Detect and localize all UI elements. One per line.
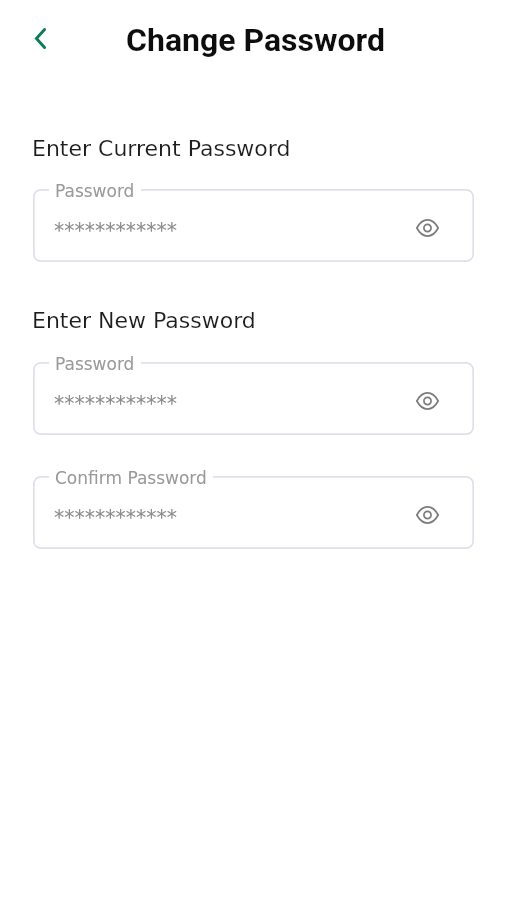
button[interactable]: Show password <box>404 492 450 538</box>
staticText: Enter New Password <box>32 308 256 334</box>
button[interactable]: Show password <box>404 378 450 424</box>
staticText: Password <box>55 181 135 201</box>
button[interactable]: Password <box>33 189 474 262</box>
staticText: Password <box>55 354 135 374</box>
button[interactable]: Password <box>33 362 474 435</box>
staticText: Enter Current Password <box>32 136 291 162</box>
button[interactable]: Back <box>17 15 63 61</box>
staticText: ************ <box>54 392 177 416</box>
staticText: ************ <box>54 506 177 530</box>
staticText: ************ <box>54 219 177 243</box>
staticText: Confirm Password <box>55 468 207 488</box>
staticText: Change Password <box>126 21 385 59</box>
button[interactable]: Show password <box>404 205 450 251</box>
button[interactable]: Confirm Password <box>33 476 474 549</box>
